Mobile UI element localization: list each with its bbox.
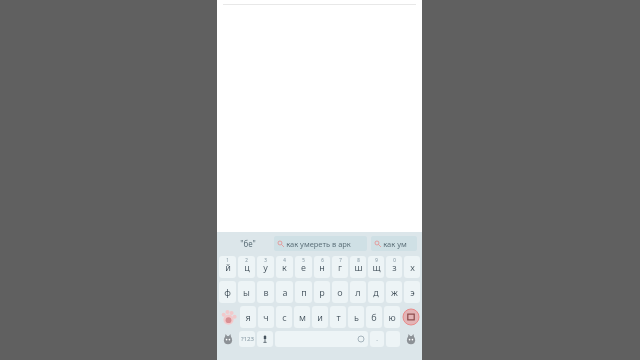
button[interactable]: м — [294, 306, 310, 328]
button[interactable]: л — [350, 281, 366, 303]
staticText: "бе" — [240, 238, 256, 249]
button[interactable]: ч — [258, 306, 274, 328]
button[interactable]: 1 — [219, 256, 236, 278]
button[interactable]: б — [366, 306, 382, 328]
staticText: г — [338, 261, 342, 273]
button[interactable]: как умереть в арк — [274, 236, 367, 251]
button[interactable]: х — [404, 256, 420, 278]
staticText: п — [301, 286, 307, 298]
button[interactable]: Emoji — [402, 331, 420, 347]
button[interactable]: Voice input — [257, 331, 273, 347]
staticText: к — [282, 261, 287, 273]
staticText: ю — [388, 311, 396, 323]
button[interactable]: 6 — [314, 256, 330, 278]
staticText: н — [319, 261, 325, 273]
button[interactable]: Backspace — [402, 306, 420, 328]
button[interactable]: 9 — [368, 256, 384, 278]
staticText: о — [337, 286, 343, 298]
staticText: у — [263, 261, 268, 273]
staticText: ф — [224, 286, 231, 298]
staticText: 7 — [339, 257, 342, 263]
button[interactable]: ж — [386, 281, 402, 303]
button[interactable]: ь — [348, 306, 364, 328]
staticText: а — [282, 286, 288, 298]
staticText: л — [355, 286, 361, 298]
staticText: 9 — [375, 257, 378, 263]
staticText: 2 — [245, 257, 248, 263]
staticText: в — [263, 286, 269, 298]
staticText: как умереть в арк — [286, 239, 351, 249]
button[interactable]: . — [370, 331, 384, 347]
button[interactable]: а — [276, 281, 293, 303]
button[interactable]: Stickers — [219, 331, 237, 347]
button[interactable]: р — [314, 281, 330, 303]
staticText: 6 — [321, 257, 324, 263]
staticText: т — [336, 311, 341, 323]
button[interactable]: я — [240, 306, 256, 328]
staticText: и — [317, 311, 323, 323]
button[interactable]: э — [404, 281, 420, 303]
button[interactable]: Shift — [219, 306, 238, 328]
button[interactable]: 3 — [257, 256, 274, 278]
button[interactable]: 7 — [332, 256, 348, 278]
staticText: д — [373, 286, 379, 298]
staticText: й — [225, 261, 231, 273]
staticText: 1 — [226, 257, 229, 263]
button[interactable]: о — [332, 281, 348, 303]
staticText: э — [410, 286, 415, 298]
staticText: 8 — [357, 257, 360, 263]
button[interactable]: "бе" — [222, 232, 274, 254]
staticText: с — [282, 311, 287, 323]
button[interactable]: 4 — [276, 256, 293, 278]
button[interactable]: 0 — [386, 256, 402, 278]
button[interactable]: 2 — [238, 256, 255, 278]
staticText: 5 — [302, 257, 305, 263]
button[interactable]: т — [330, 306, 346, 328]
staticText: ж — [391, 286, 398, 298]
button[interactable]: д — [368, 281, 384, 303]
staticText: 3 — [264, 257, 267, 263]
staticText: з — [392, 261, 397, 273]
staticText: р — [319, 286, 325, 298]
button[interactable]: Space — [275, 331, 368, 347]
button[interactable]: с — [276, 306, 292, 328]
staticText: ы — [243, 286, 250, 298]
staticText: 0 — [393, 257, 396, 263]
staticText: ш — [354, 261, 363, 273]
staticText: х — [410, 261, 415, 273]
staticText: ц — [244, 261, 250, 273]
button[interactable]: ?123 — [239, 331, 255, 347]
button[interactable]: как ум — [371, 236, 417, 251]
staticText: . — [376, 335, 378, 343]
staticText: м — [299, 311, 306, 323]
button[interactable]: 8 — [350, 256, 366, 278]
staticText: б — [371, 311, 377, 323]
button[interactable]: ы — [238, 281, 255, 303]
button[interactable]: 5 — [295, 256, 312, 278]
staticText: ?123 — [241, 335, 254, 343]
button[interactable]: п — [295, 281, 312, 303]
staticText: ь — [354, 311, 359, 323]
button[interactable]: ю — [384, 306, 400, 328]
staticText: я — [245, 311, 251, 323]
staticText: щ — [372, 261, 381, 273]
button[interactable]: в — [257, 281, 274, 303]
staticText: как ум — [383, 239, 407, 249]
staticText: 4 — [283, 257, 286, 263]
staticText: ч — [263, 311, 269, 323]
button[interactable]: ф — [219, 281, 236, 303]
staticText: е — [301, 261, 306, 273]
button[interactable]: и — [312, 306, 328, 328]
